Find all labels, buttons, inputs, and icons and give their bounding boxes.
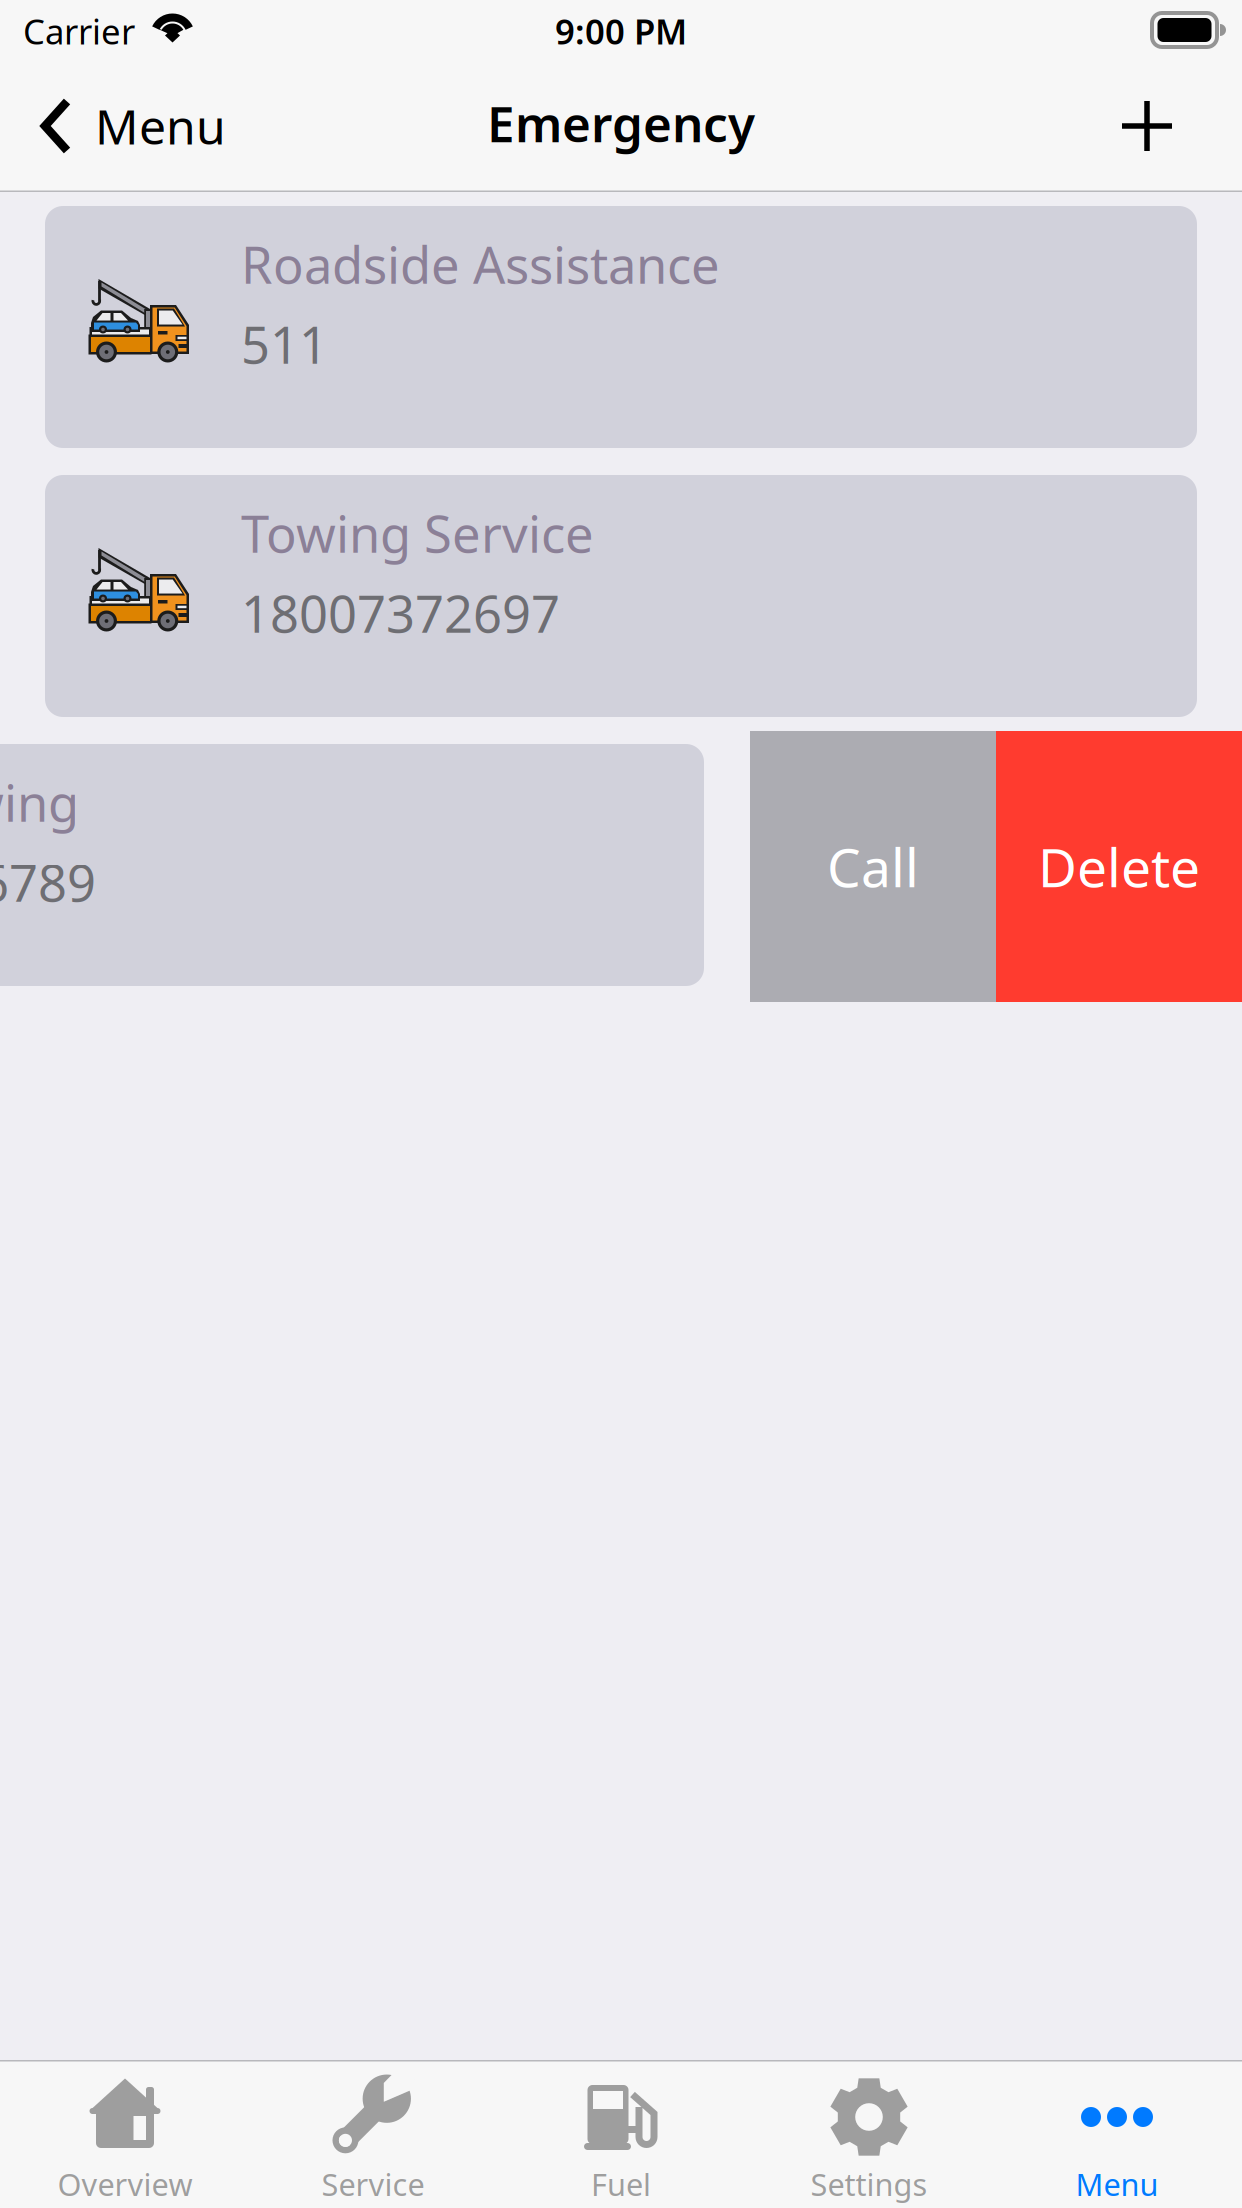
button[interactable]: Settings — [745, 2060, 993, 2208]
staticText: 180055566789 — [0, 848, 96, 916]
staticText: Mike's Towing — [0, 768, 79, 836]
staticText: 9:00 PM — [555, 8, 687, 54]
button[interactable]: Mike's Towing — [0, 744, 704, 986]
staticText: Delete — [1038, 831, 1200, 902]
button[interactable]: Call — [750, 731, 996, 1002]
button[interactable]: Menu — [993, 2060, 1241, 2208]
staticText: Settings — [810, 2164, 927, 2204]
staticText: 18007372697 — [241, 579, 560, 647]
staticText: Menu — [1075, 2164, 1158, 2204]
staticText: Fuel — [591, 2164, 651, 2204]
button[interactable]: Fuel — [497, 2060, 745, 2208]
staticText: Towing Service — [241, 499, 594, 567]
button[interactable]: Roadside Assistance — [45, 206, 1197, 448]
button[interactable]: Menu — [0, 60, 246, 192]
staticText: Carrier — [23, 8, 135, 54]
staticText: Emergency — [487, 90, 755, 156]
staticText: Menu — [95, 94, 226, 158]
staticText: Call — [827, 831, 919, 902]
staticText: Service — [321, 2164, 424, 2204]
button[interactable]: Service — [249, 2060, 497, 2208]
button[interactable]: Add contact — [1095, 60, 1199, 192]
staticText: Overview — [57, 2164, 192, 2204]
button[interactable]: Towing Service — [45, 475, 1197, 717]
staticText: 511 — [241, 310, 328, 378]
button[interactable]: Delete — [996, 731, 1242, 1002]
staticText: Roadside Assistance — [241, 230, 720, 298]
button[interactable]: Overview — [1, 2060, 249, 2208]
